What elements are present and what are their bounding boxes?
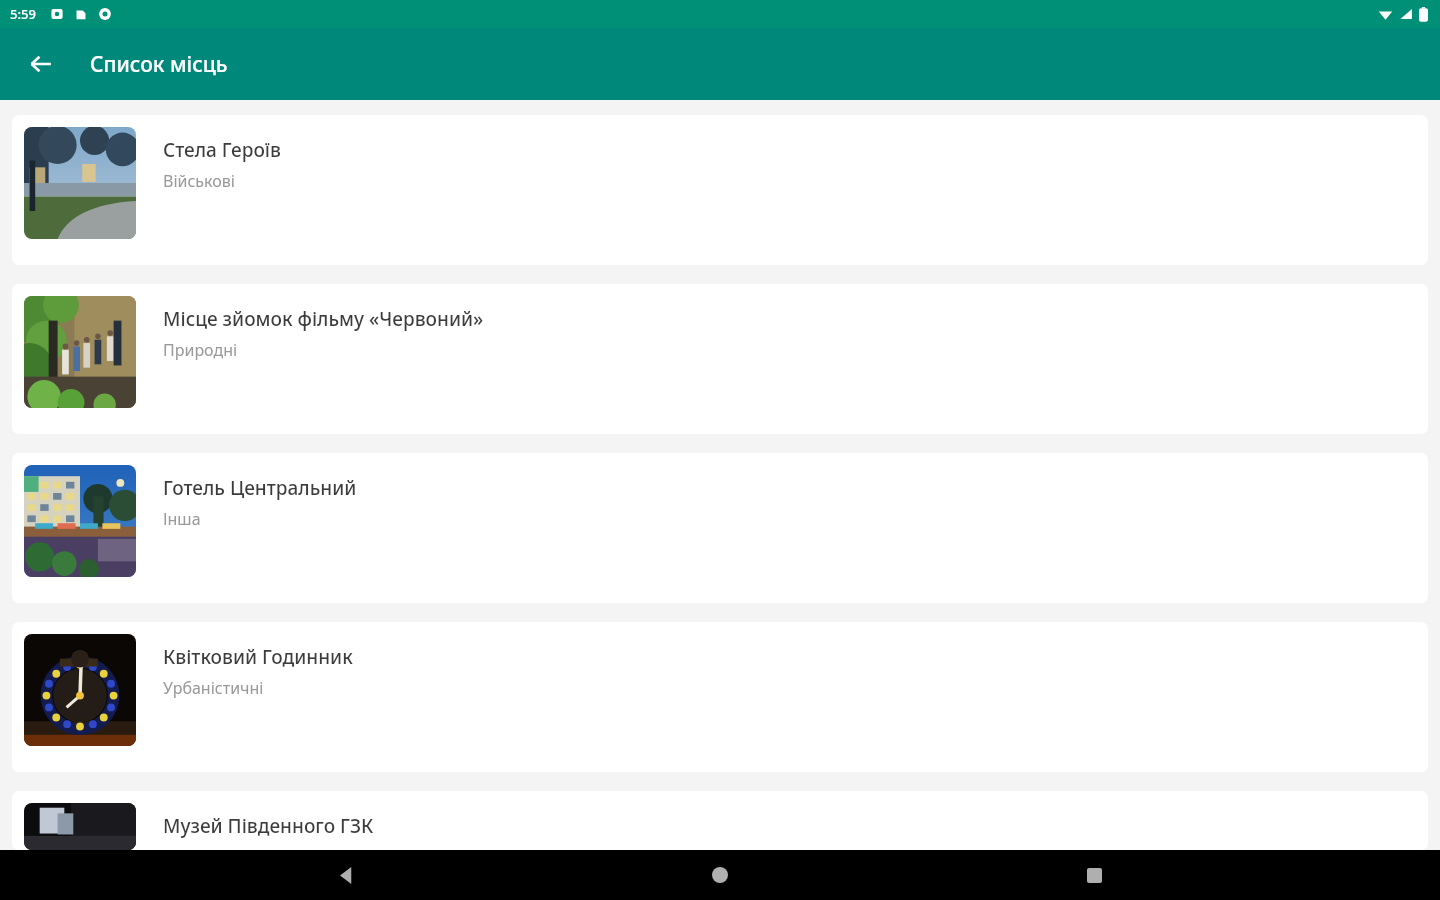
button[interactable]: Стела Героїв	[12, 115, 1428, 265]
staticText: Музей Південного ГЗК	[163, 813, 374, 839]
button[interactable]: Місце зйомок фільму «Червоний»	[12, 284, 1428, 434]
staticText: Список місць	[90, 50, 228, 79]
button[interactable]: Back	[18, 41, 64, 87]
staticText: Урбаністичні	[163, 677, 264, 699]
button[interactable]: Музей Південного ГЗК	[12, 791, 1428, 850]
button[interactable]: Back	[318, 850, 374, 900]
button[interactable]: Home	[692, 850, 748, 900]
staticText: Природні	[163, 339, 238, 361]
button[interactable]: Готель Центральний	[12, 453, 1428, 603]
button[interactable]: Recent apps	[1066, 850, 1122, 900]
button[interactable]: Квітковий Годинник	[12, 622, 1428, 772]
staticText: Стела Героїв	[163, 137, 281, 163]
staticText: Місце зйомок фільму «Червоний»	[163, 306, 484, 332]
staticText: Квітковий Годинник	[163, 644, 353, 670]
staticText: 5:59	[10, 5, 36, 23]
staticText: Військові	[163, 170, 235, 192]
staticText: Інша	[163, 508, 201, 530]
staticText: Готель Центральний	[163, 475, 357, 501]
